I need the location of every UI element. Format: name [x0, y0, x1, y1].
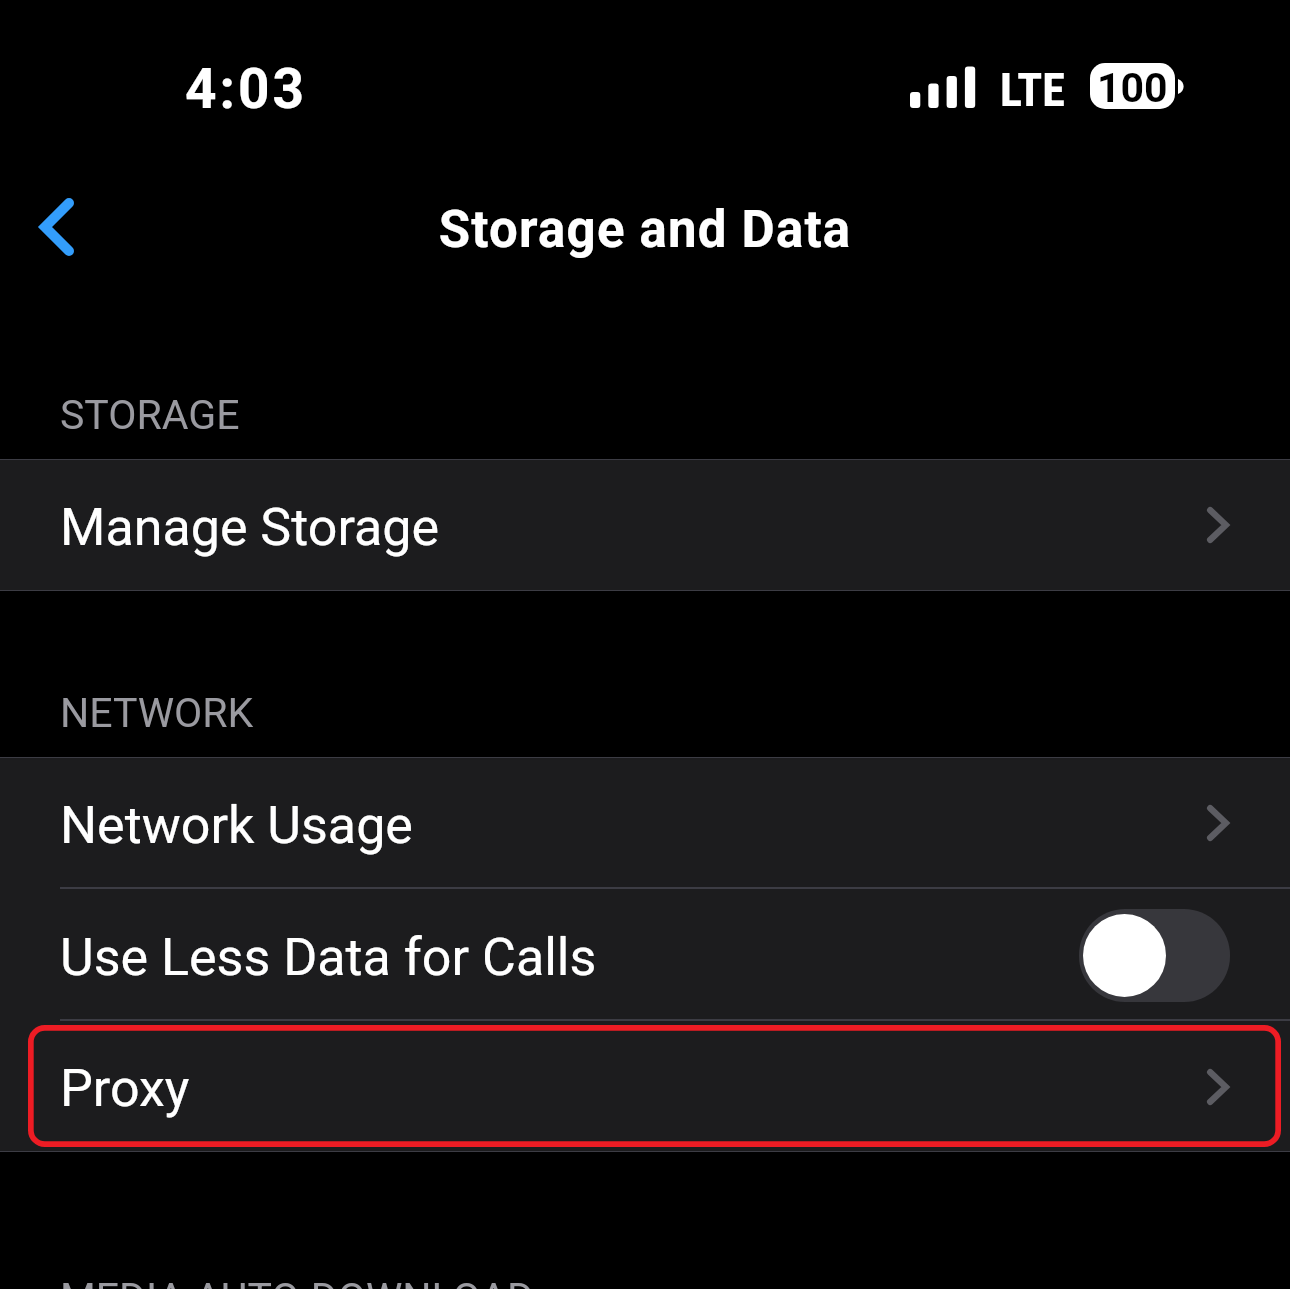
staticText: NETWORK	[60, 689, 254, 737]
button[interactable]: Use Less Data for Calls	[0, 889, 1290, 1021]
staticText: 100	[1097, 64, 1168, 109]
button[interactable]: Back	[6, 176, 108, 278]
staticText: Network Usage	[60, 795, 413, 856]
button[interactable]: Network Usage	[0, 757, 1290, 889]
staticText: LTE	[1000, 63, 1065, 117]
staticText: Storage and Data	[0, 200, 1290, 260]
staticText: MEDIA AUTO-DOWNLOAD	[60, 1274, 534, 1289]
button[interactable]: Proxy	[0, 1021, 1290, 1152]
staticText: 4:03	[185, 57, 308, 121]
staticText: Proxy	[60, 1058, 190, 1119]
staticText: Manage Storage	[60, 497, 440, 558]
button[interactable]: Manage Storage	[0, 459, 1290, 591]
button[interactable]: Use Less Data for Calls, off	[1079, 909, 1230, 1002]
staticText: Use Less Data for Calls	[60, 927, 597, 988]
staticText: STORAGE	[60, 391, 240, 439]
